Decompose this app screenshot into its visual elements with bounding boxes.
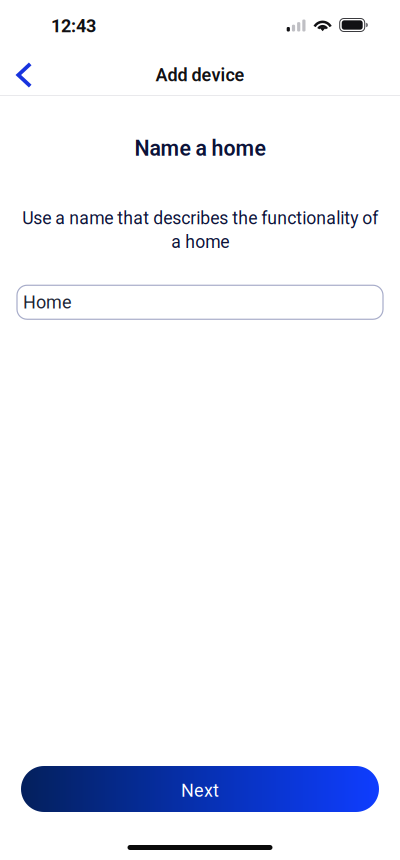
staticText: Home	[23, 292, 72, 313]
button[interactable]: Back	[0, 46, 48, 95]
staticText: Add device	[155, 64, 244, 86]
button[interactable]: Next	[21, 766, 379, 812]
staticText: Name a home	[134, 136, 265, 161]
button[interactable]: Home	[17, 285, 383, 319]
staticText: Next	[181, 780, 219, 801]
staticText: Use a name that describes the functional…	[22, 208, 378, 252]
staticText: 12:43	[51, 15, 96, 37]
